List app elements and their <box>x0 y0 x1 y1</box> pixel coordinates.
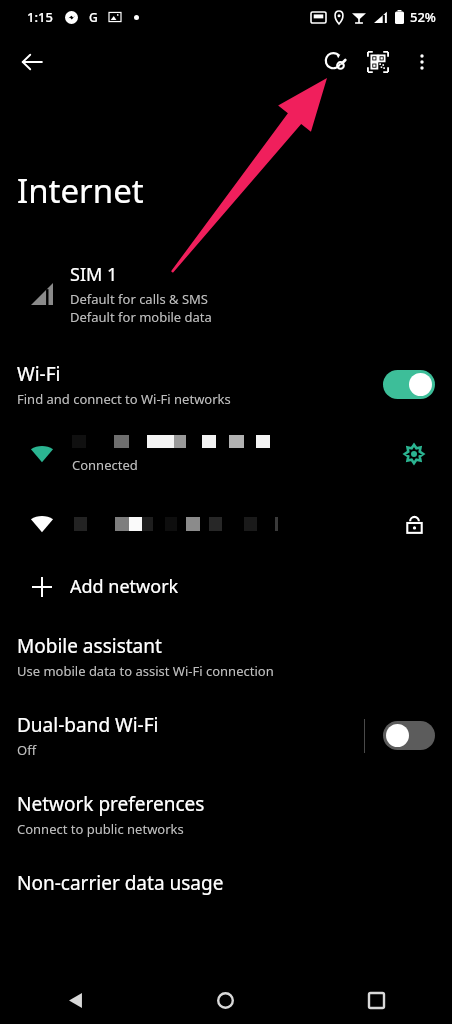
staticText: Mobile assistant <box>17 633 162 659</box>
staticText: Default for mobile data <box>70 308 212 326</box>
staticText: Connect to public networks <box>17 820 184 838</box>
staticText: Off <box>17 741 37 759</box>
button[interactable]: Network settings <box>392 432 436 476</box>
staticText: 1:15 <box>27 8 53 26</box>
button[interactable]: Recent apps <box>301 976 452 1024</box>
button[interactable]: SIM 1 <box>0 260 452 328</box>
button[interactable]: Back <box>10 40 54 84</box>
button[interactable]: Home <box>150 976 301 1024</box>
staticText: Default for calls & SMS <box>70 290 208 308</box>
staticText: Connected <box>72 456 138 474</box>
button[interactable]: Wi-Fi <box>0 357 452 412</box>
button[interactable]: Non-carrier data usage <box>0 868 452 898</box>
staticText: Use mobile data to assist Wi-Fi connecti… <box>17 662 274 680</box>
button[interactable]: Dual-band Wi-Fi <box>0 710 452 761</box>
button[interactable]: Turn on <box>383 721 435 750</box>
staticText: 52% <box>410 8 436 26</box>
staticText: Wi-Fi <box>17 361 61 387</box>
staticText: Non-carrier data usage <box>17 870 224 896</box>
staticText: Internet <box>17 168 144 213</box>
staticText: SIM 1 <box>70 262 118 287</box>
staticText: Find and connect to Wi-Fi networks <box>17 390 231 408</box>
button[interactable]: Network preferences <box>0 789 452 840</box>
button[interactable]: Add network <box>0 568 452 605</box>
button[interactable]: Turn off <box>383 370 435 399</box>
button[interactable]: Mobile assistant <box>0 631 452 682</box>
staticText: Dual-band Wi-Fi <box>17 712 159 738</box>
button[interactable]: Scan QR code <box>356 40 400 84</box>
button[interactable]: Fix connectivity <box>312 40 356 84</box>
button[interactable]: Connected <box>0 432 452 476</box>
staticText: G <box>89 9 98 25</box>
button[interactable]: Back <box>0 976 150 1024</box>
staticText: Network preferences <box>17 791 205 817</box>
button[interactable]: Secured network <box>0 502 452 546</box>
staticText: Add network <box>70 574 179 599</box>
button[interactable]: More options <box>400 40 444 84</box>
button[interactable]: Secured network <box>392 502 436 546</box>
